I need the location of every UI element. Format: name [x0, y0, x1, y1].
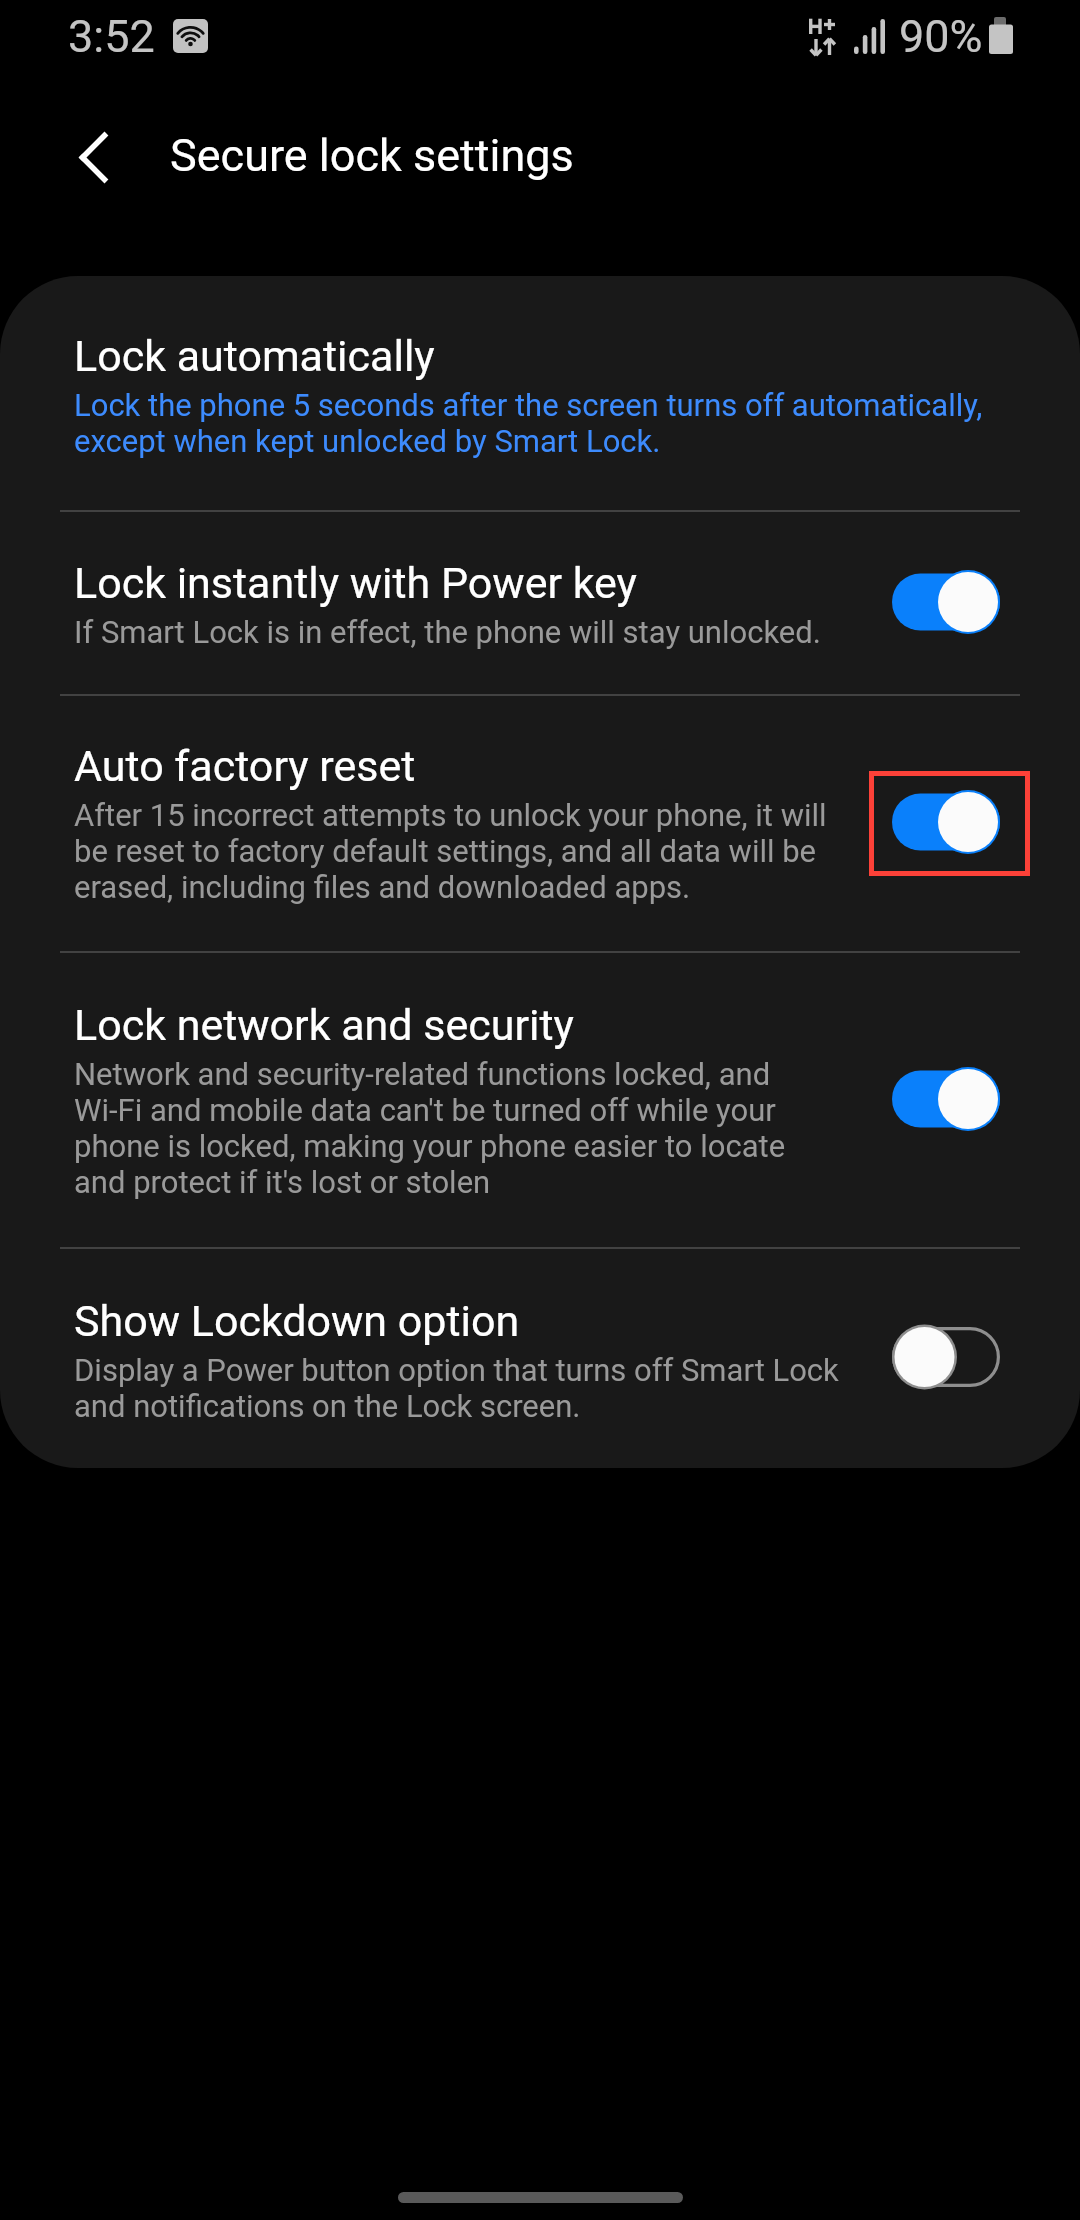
button[interactable]: Lock instantly with Power key	[0, 512, 1080, 694]
staticText: Show Lockdown option	[74, 1296, 520, 1346]
staticText: 90%	[899, 13, 983, 62]
staticText: Lock network and security	[74, 1000, 574, 1050]
button[interactable]: Show Lockdown option	[0, 1249, 1080, 1468]
button[interactable]: Lock network and security	[0, 953, 1080, 1247]
staticText: Lock instantly with Power key	[74, 558, 637, 608]
staticText: 3:52	[68, 13, 155, 62]
button[interactable]: Auto factory reset	[0, 696, 1080, 951]
staticText: Secure lock settings	[170, 129, 574, 182]
button[interactable]: Lock automatically	[0, 276, 1080, 510]
staticText: Auto factory reset	[74, 741, 416, 791]
staticText: Lock automatically	[74, 331, 435, 381]
staticText: After 15 incorrect attempts to unlock yo…	[74, 797, 843, 905]
staticText: Display a Power button option that turns…	[74, 1352, 843, 1424]
button[interactable]: Lock network and security	[869, 1048, 1030, 1153]
staticText: Lock the phone 5 seconds after the scree…	[74, 387, 1020, 459]
button[interactable]: Auto factory reset	[869, 771, 1030, 876]
staticText: If Smart Lock is in effect, the phone wi…	[74, 614, 821, 650]
button[interactable]: Lock instantly with Power key	[869, 551, 1030, 656]
button[interactable]: Show Lockdown option	[869, 1306, 1030, 1411]
staticText: Network and security-related functions l…	[74, 1056, 843, 1200]
button[interactable]: Back	[43, 107, 143, 207]
